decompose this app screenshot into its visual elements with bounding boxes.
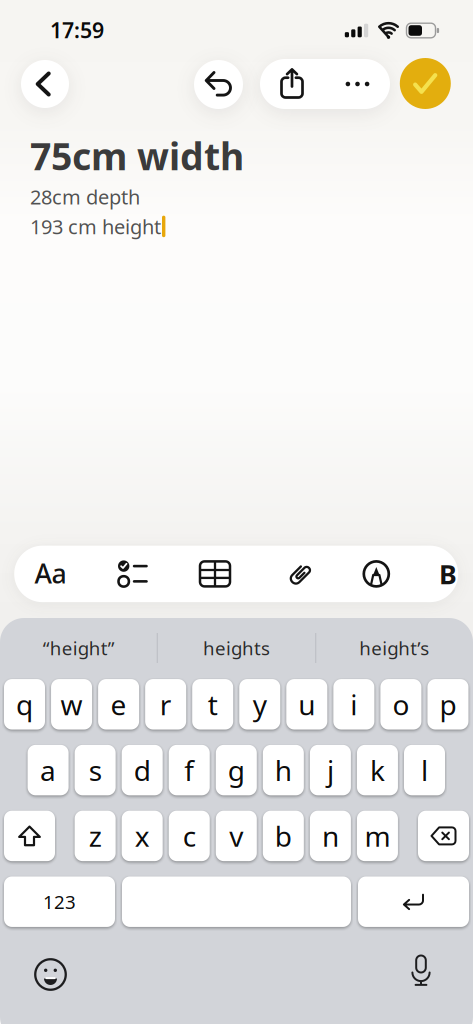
- button[interactable]: r: [145, 679, 186, 729]
- staticText: Aa: [34, 555, 66, 591]
- button[interactable]: m: [357, 811, 398, 861]
- staticText: e: [111, 686, 127, 723]
- button[interactable]: b: [263, 811, 304, 861]
- button[interactable]: Return: [358, 876, 469, 927]
- staticText: t: [208, 686, 218, 723]
- button[interactable]: p: [427, 679, 468, 729]
- button[interactable]: i: [333, 679, 374, 729]
- staticText: w: [60, 686, 82, 723]
- staticText: o: [392, 686, 409, 723]
- staticText: d: [134, 751, 151, 789]
- staticText: heights: [203, 636, 270, 660]
- button[interactable]: e: [98, 679, 139, 729]
- staticText: 75cm width: [30, 131, 244, 181]
- button[interactable]: Done: [400, 58, 451, 109]
- button[interactable]: Delete: [418, 811, 469, 861]
- staticText: 123: [43, 889, 76, 914]
- button[interactable]: Space: [122, 876, 351, 927]
- button[interactable]: x: [122, 811, 163, 861]
- button[interactable]: “height”: [4, 624, 154, 672]
- button[interactable]: Table: [189, 546, 241, 602]
- button[interactable]: n: [310, 811, 351, 861]
- button[interactable]: Bold: [428, 546, 468, 602]
- staticText: n: [322, 817, 339, 854]
- button[interactable]: heights: [161, 624, 311, 672]
- staticText: q: [16, 686, 33, 723]
- staticText: 193 cm height: [30, 213, 161, 240]
- staticText: x: [135, 817, 150, 854]
- staticText: s: [89, 751, 102, 789]
- button[interactable]: height’s: [319, 624, 469, 672]
- staticText: y: [253, 686, 267, 723]
- staticText: h: [275, 751, 292, 789]
- staticText: v: [229, 817, 243, 854]
- button[interactable]: o: [380, 679, 421, 729]
- button[interactable]: Dictate: [393, 946, 449, 996]
- button[interactable]: s: [75, 745, 116, 795]
- staticText: i: [350, 686, 357, 723]
- staticText: u: [298, 686, 315, 723]
- staticText: f: [184, 751, 194, 789]
- staticText: z: [89, 817, 102, 854]
- button[interactable]: w: [51, 679, 92, 729]
- staticText: 17:59: [50, 16, 104, 44]
- staticText: “height”: [43, 636, 115, 660]
- button[interactable]: Checklist: [107, 546, 159, 602]
- staticText: a: [40, 751, 56, 789]
- button[interactable]: Emoji: [22, 949, 78, 999]
- button[interactable]: More: [326, 59, 388, 109]
- staticText: j: [327, 751, 334, 789]
- staticText: l: [421, 751, 428, 789]
- staticText: b: [275, 817, 292, 854]
- button[interactable]: h: [263, 745, 304, 795]
- button[interactable]: a: [28, 745, 69, 795]
- button[interactable]: Format: [24, 545, 76, 601]
- button[interactable]: Draw: [350, 546, 402, 602]
- button[interactable]: f: [169, 745, 210, 795]
- button[interactable]: t: [192, 679, 233, 729]
- staticText: B: [439, 556, 457, 592]
- button[interactable]: Undo: [194, 60, 243, 109]
- button[interactable]: y: [239, 679, 280, 729]
- button[interactable]: Shift: [4, 811, 55, 861]
- staticText: 28cm depth: [30, 184, 140, 210]
- button[interactable]: g: [216, 745, 257, 795]
- button[interactable]: z: [75, 811, 116, 861]
- staticText: c: [183, 817, 196, 854]
- button[interactable]: l: [404, 745, 445, 795]
- button[interactable]: d: [122, 745, 163, 795]
- button[interactable]: c: [169, 811, 210, 861]
- button[interactable]: 123: [4, 876, 115, 927]
- staticText: g: [228, 751, 245, 789]
- button[interactable]: j: [310, 745, 351, 795]
- button[interactable]: Share: [261, 59, 323, 109]
- button[interactable]: k: [357, 745, 398, 795]
- button[interactable]: u: [286, 679, 327, 729]
- button[interactable]: v: [216, 811, 257, 861]
- staticText: p: [439, 686, 456, 723]
- staticText: height’s: [359, 636, 429, 660]
- staticText: k: [370, 751, 385, 789]
- button[interactable]: Back: [21, 60, 69, 108]
- button[interactable]: Attachment: [274, 546, 326, 602]
- staticText: m: [364, 817, 390, 854]
- button[interactable]: q: [4, 679, 45, 729]
- staticText: r: [160, 686, 172, 723]
